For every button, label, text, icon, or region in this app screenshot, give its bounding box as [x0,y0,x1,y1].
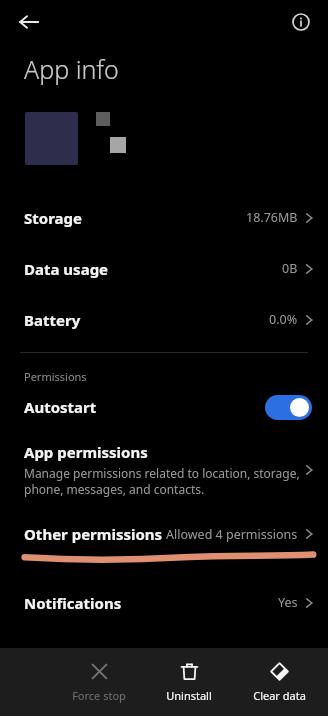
staticText: 18.76MB [246,209,298,226]
staticText: Permissions [24,369,87,384]
staticText: Clear data [253,688,306,703]
button[interactable]: Force stop [62,657,136,707]
staticText: 0B [282,260,298,277]
staticText: Allowed 4 permissions [166,526,298,543]
button[interactable]: Storage [0,192,328,243]
staticText: Yes [278,594,298,611]
staticText: Force stop [72,688,126,703]
staticText: Autostart [24,397,265,417]
staticText: Manage permissions related to location, … [24,465,302,497]
button[interactable]: Autostart [0,384,328,430]
button[interactable]: App details info [282,3,320,41]
button[interactable]: Uninstall [152,657,226,707]
staticText: Notifications [24,593,278,613]
button[interactable]: Clear data [242,657,316,707]
staticText: Battery [24,310,269,330]
staticText: Other permissions [24,524,163,544]
button[interactable]: Notifications [0,577,328,628]
button[interactable]: Battery [0,294,328,345]
staticText: Data usage [24,259,282,279]
staticText: App info [24,52,119,86]
button[interactable]: Other permissions [0,517,328,551]
staticText: Storage [24,208,246,228]
staticText: 0.0% [269,311,298,328]
button[interactable]: Data usage [0,243,328,294]
button[interactable]: App permissions [0,442,328,497]
button[interactable]: Back [10,3,48,41]
staticText: App permissions [24,442,148,462]
staticText: Uninstall [166,688,212,703]
